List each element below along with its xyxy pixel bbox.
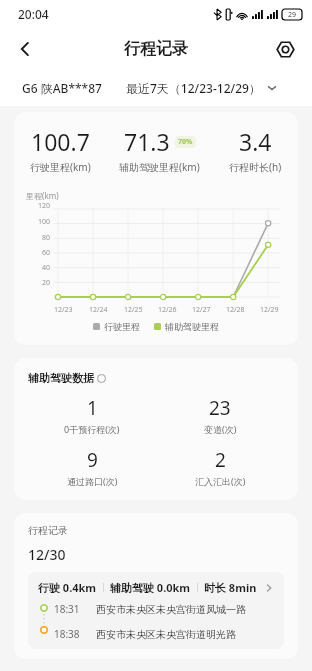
staticText: 20 bbox=[26, 278, 50, 288]
staticText: 里程(km) bbox=[26, 190, 59, 201]
staticText: 120 bbox=[26, 201, 50, 211]
staticText: 辅助驾驶里程 bbox=[165, 321, 219, 332]
staticText: 40 bbox=[26, 263, 50, 273]
staticText: 3.4 bbox=[239, 126, 272, 157]
staticText: 最近7天（12/23-12/29） bbox=[126, 80, 261, 96]
staticText: 行驶里程(km) bbox=[30, 160, 91, 174]
staticText: G6 陕AB***87 bbox=[22, 80, 102, 96]
staticText: 0干预行程(次) bbox=[64, 423, 120, 435]
staticText: 60 bbox=[26, 248, 50, 258]
button[interactable]: Back bbox=[8, 32, 42, 66]
staticText: 2 bbox=[215, 447, 226, 473]
button[interactable]: G6 陕AB***87 bbox=[22, 80, 102, 96]
staticText: 时长 8min bbox=[204, 580, 257, 595]
staticText: 80 bbox=[26, 233, 50, 243]
staticText: 西安市未央区未央宫街道明光路 bbox=[96, 628, 236, 641]
button[interactable]: Settings bbox=[268, 32, 302, 66]
staticText: 辅助驾驶数据 bbox=[28, 371, 94, 385]
staticText: 18:31 bbox=[54, 602, 90, 616]
staticText: 西安市未央区未央宫街道凤城一路 bbox=[96, 603, 246, 616]
staticText: 辅助驾驶 0.0km bbox=[110, 580, 191, 595]
staticText: 18:38 bbox=[54, 627, 90, 641]
staticText: 12/25 bbox=[124, 305, 143, 315]
button[interactable]: 行驶 0.4km bbox=[28, 572, 284, 649]
staticText: 12/24 bbox=[89, 305, 108, 315]
staticText: 12/28 bbox=[226, 305, 245, 315]
button[interactable]: 最近7天（12/23-12/29） bbox=[126, 80, 290, 96]
staticText: 12/29 bbox=[260, 305, 279, 315]
staticText: 12/30 bbox=[28, 545, 66, 564]
staticText: 行程记录 bbox=[28, 524, 68, 537]
staticText: 变道(次) bbox=[204, 423, 237, 435]
staticText: 29 bbox=[288, 10, 297, 20]
staticText: 70% bbox=[178, 137, 193, 147]
staticText: 行驶里程 bbox=[104, 321, 140, 332]
staticText: 12/27 bbox=[192, 305, 211, 315]
button[interactable]: Info bbox=[97, 374, 106, 383]
staticText: 23 bbox=[209, 395, 231, 421]
staticText: 行驶 0.4km bbox=[38, 580, 97, 595]
staticText: 12/26 bbox=[158, 305, 177, 315]
staticText: 9 bbox=[87, 447, 98, 473]
staticText: 汇入汇出(次) bbox=[195, 475, 246, 487]
staticText: 100 bbox=[26, 217, 50, 227]
staticText: 行程记录 bbox=[124, 39, 188, 59]
staticText: 12/23 bbox=[54, 305, 73, 315]
staticText: 71.3 bbox=[124, 126, 170, 157]
staticText: 通过路口(次) bbox=[67, 475, 118, 487]
staticText: 辅助驾驶里程(km) bbox=[119, 160, 200, 174]
staticText: 100.7 bbox=[31, 126, 90, 157]
staticText: 1 bbox=[87, 395, 98, 421]
staticText: 行程时长(h) bbox=[229, 160, 282, 174]
staticText: 20:04 bbox=[18, 6, 49, 22]
